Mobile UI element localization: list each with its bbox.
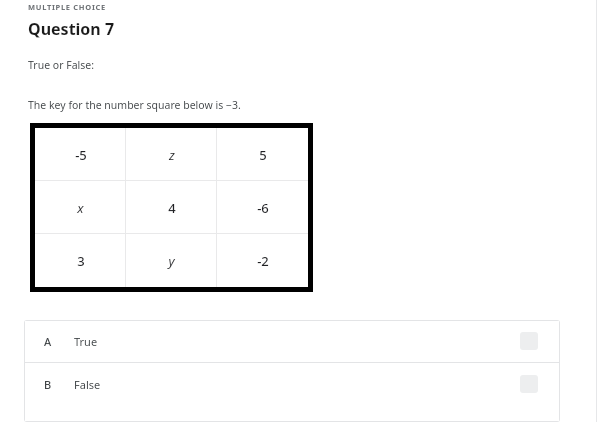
button[interactable]: B <box>24 363 560 405</box>
staticText: True <box>74 334 98 349</box>
staticText: 5 <box>259 146 267 164</box>
staticText: B <box>44 377 52 392</box>
button[interactable]: A <box>24 320 560 362</box>
staticText: -2 <box>257 252 269 270</box>
staticText: False <box>74 377 101 392</box>
staticText: True or False: <box>28 58 95 72</box>
staticText: 3 <box>77 252 85 270</box>
staticText: 4 <box>168 199 176 217</box>
staticText: z <box>169 146 175 164</box>
staticText: Question 7 <box>28 18 115 40</box>
staticText: MULTIPLE CHOICE <box>28 2 106 12</box>
staticText: -6 <box>257 199 269 217</box>
staticText: -5 <box>75 146 87 164</box>
staticText: x <box>77 199 84 217</box>
staticText: The key for the number square below is −… <box>28 98 241 112</box>
staticText: A <box>44 334 52 349</box>
staticText: y <box>168 252 175 270</box>
